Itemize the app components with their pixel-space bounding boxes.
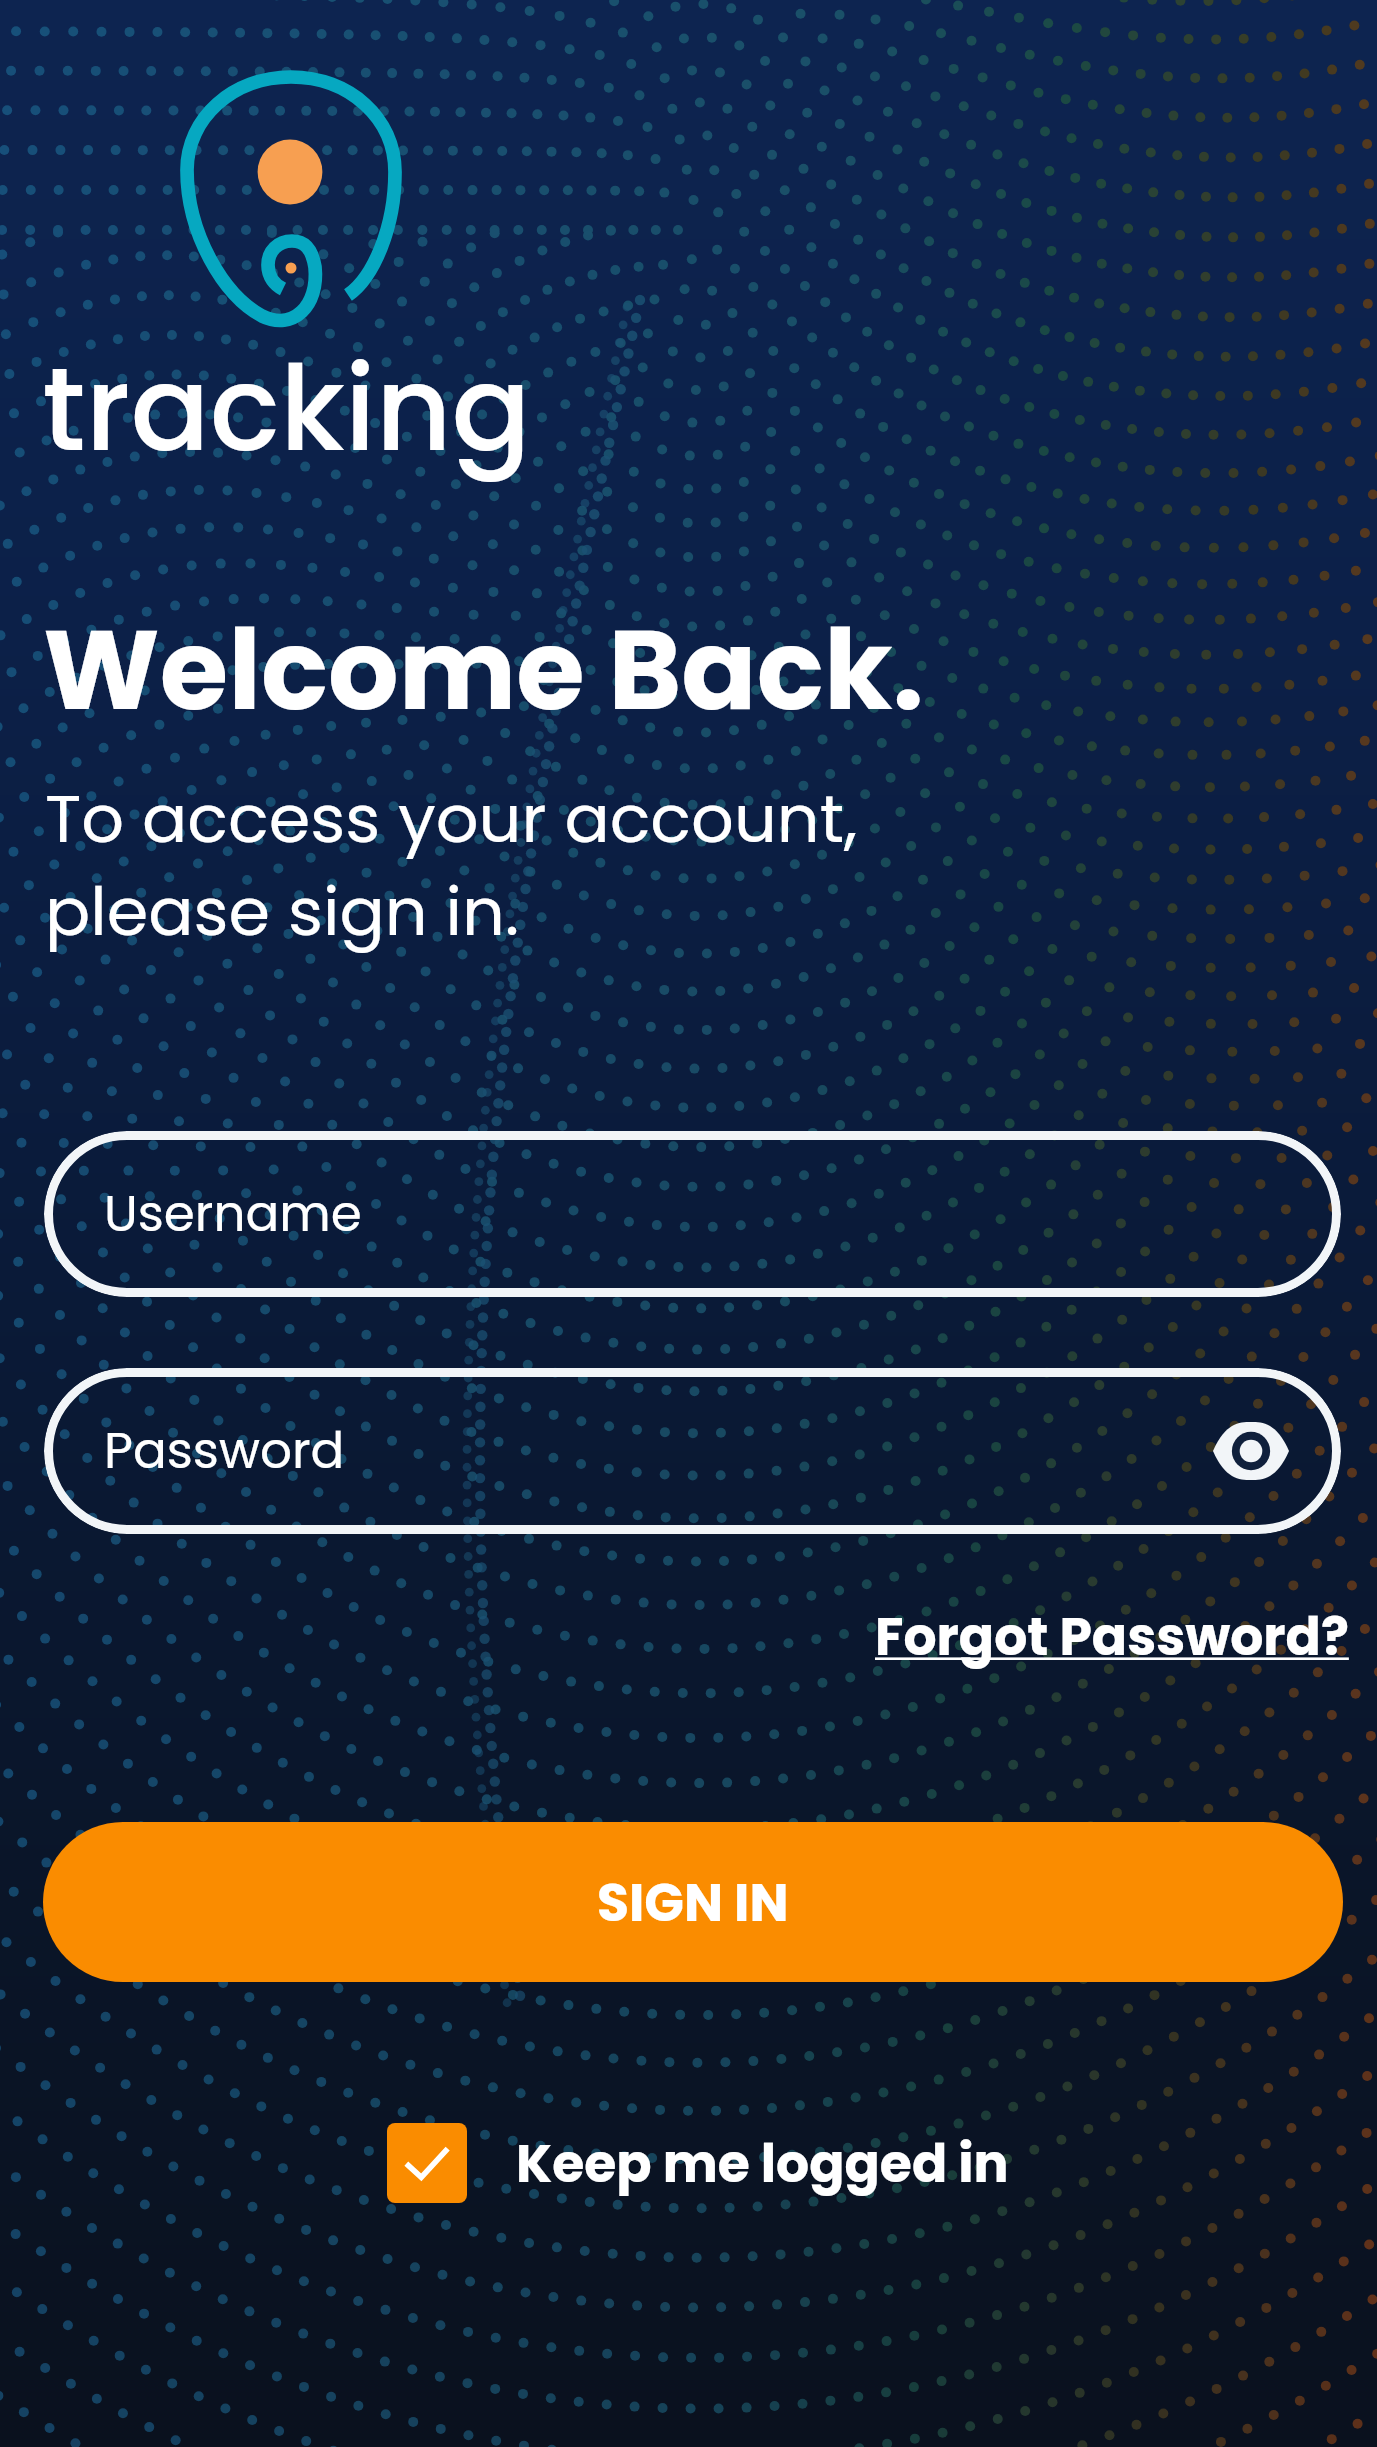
button[interactable]: Username <box>44 1131 1341 1297</box>
staticText: Username <box>104 1179 362 1249</box>
button[interactable]: Show password <box>1205 1405 1297 1497</box>
button[interactable]: SIGN IN <box>43 1822 1343 1982</box>
button[interactable]: Keep me logged in <box>387 2123 1009 2203</box>
staticText: Welcome Back. <box>43 592 924 747</box>
staticText: Keep me logged in <box>516 2127 1009 2200</box>
button[interactable]: Password <box>44 1368 1341 1534</box>
button[interactable]: Forgot Password? <box>875 1600 1349 1673</box>
staticText: tracking <box>42 327 531 491</box>
staticText: Forgot Password? <box>875 1600 1349 1673</box>
staticText: SIGN IN <box>597 1866 789 1939</box>
staticText: To access your account, please sign in. <box>45 772 858 959</box>
staticText: Password <box>104 1416 345 1486</box>
